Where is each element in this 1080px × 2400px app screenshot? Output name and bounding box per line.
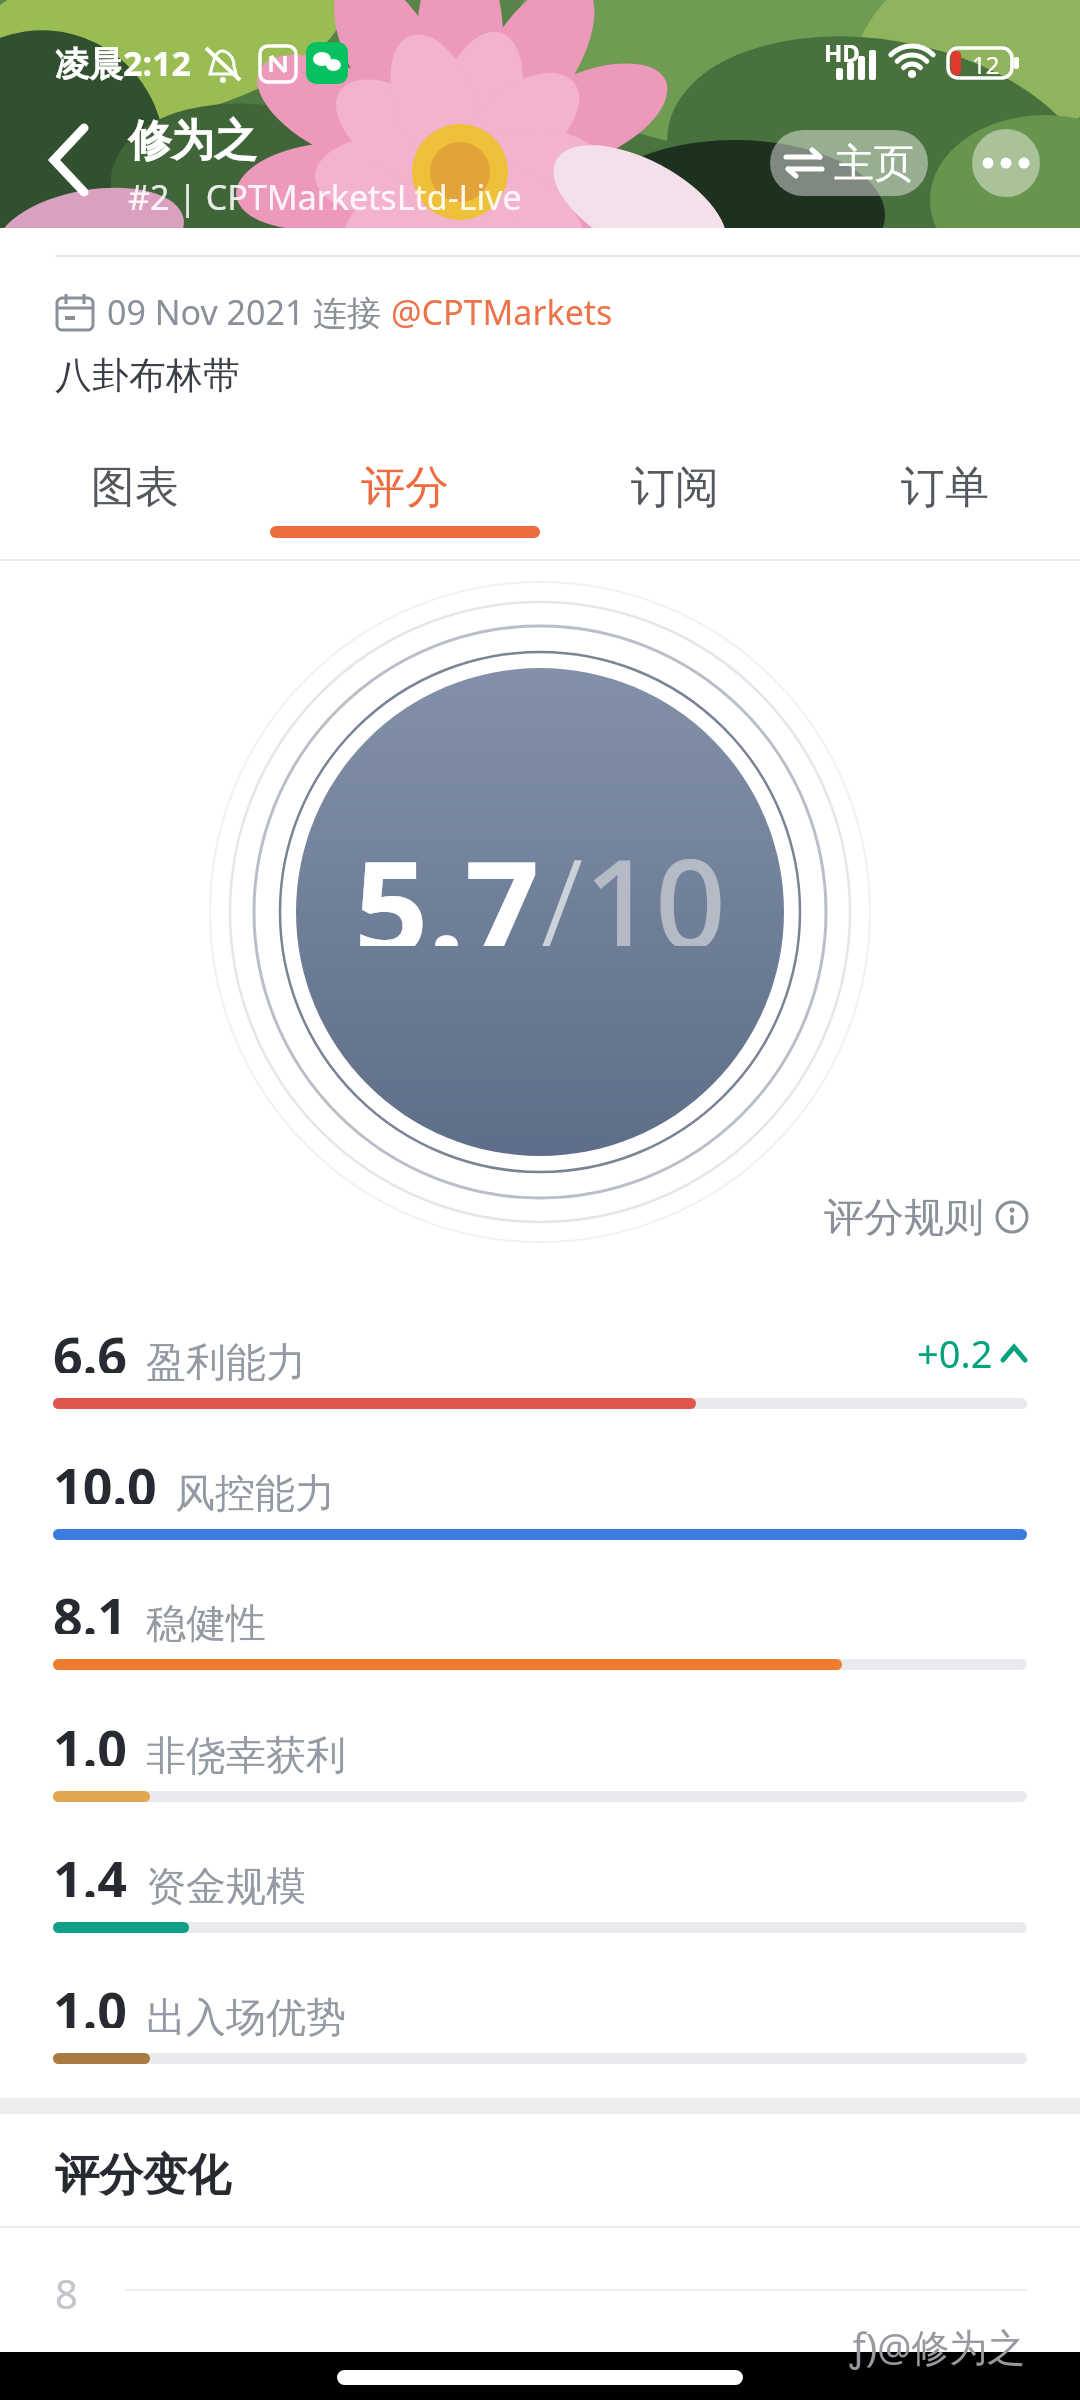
staticText: 修为之 (128, 114, 257, 168)
button[interactable]: 评分规则 (0, 1192, 1030, 1242)
staticText: 12 (972, 48, 1000, 81)
staticText: 1.0 (53, 1712, 128, 1766)
staticText: 6.6 (53, 1319, 128, 1373)
staticText: 评分变化 (55, 2148, 231, 2203)
staticText: 8 (55, 2266, 78, 2320)
staticText: 订阅 (631, 460, 719, 514)
staticText: 1.4 (53, 1843, 128, 1897)
staticText: / (540, 816, 584, 946)
staticText: 5.7 (354, 816, 540, 946)
button[interactable] (994, 1199, 1030, 1235)
staticText: 图表 (91, 460, 179, 514)
staticText: 八卦布林带 (55, 352, 240, 399)
staticText: 凌晨2:12 (55, 40, 191, 86)
staticText: 8.1 (53, 1580, 128, 1634)
staticText: 资金规模 (146, 1861, 306, 1911)
button[interactable]: 订单 (810, 460, 1080, 514)
staticText: 评分 (361, 460, 449, 514)
staticText: 盈利能力 (146, 1337, 306, 1387)
button[interactable]: 主页 (770, 130, 928, 196)
button[interactable] (44, 120, 96, 200)
staticText: +0.2 (917, 1327, 993, 1379)
staticText: 10.0 (53, 1450, 157, 1504)
staticText: 非侥幸获利 (146, 1730, 346, 1780)
button[interactable] (972, 129, 1040, 197)
staticText: 风控能力 (175, 1468, 335, 1518)
staticText: 10 (584, 816, 726, 946)
staticText: 主页 (834, 138, 914, 188)
staticText: 评分规则 (824, 1192, 984, 1242)
staticText: #2 | CPTMarketsLtd-Live (128, 174, 522, 220)
button[interactable]: @CPTMarkets (391, 289, 613, 335)
staticText: @CPTMarkets (391, 289, 613, 335)
staticText: 09 Nov 2021 连接 (107, 289, 391, 335)
button[interactable]: 图表 (0, 460, 270, 514)
button[interactable]: 评分 (270, 460, 540, 514)
staticText: HD (824, 36, 860, 69)
button[interactable]: 订阅 (540, 460, 810, 514)
staticText: 出入场优势 (146, 1992, 346, 2042)
staticText: 稳健性 (146, 1598, 266, 1648)
staticText: ƒ)@修为之 (850, 2320, 1026, 2372)
staticText: 订单 (901, 460, 989, 514)
staticText: 1.0 (53, 1974, 128, 2028)
